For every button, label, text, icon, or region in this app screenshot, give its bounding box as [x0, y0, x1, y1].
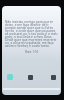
staticText: Rute 1:16 — [2, 50, 61, 54]
button[interactable]: Settings — [51, 75, 56, 80]
staticText: Não insistas comigo para que te deixe, e… — [5, 20, 58, 48]
button[interactable]: Copy — [28, 75, 33, 80]
button[interactable]: Share — [7, 74, 13, 80]
